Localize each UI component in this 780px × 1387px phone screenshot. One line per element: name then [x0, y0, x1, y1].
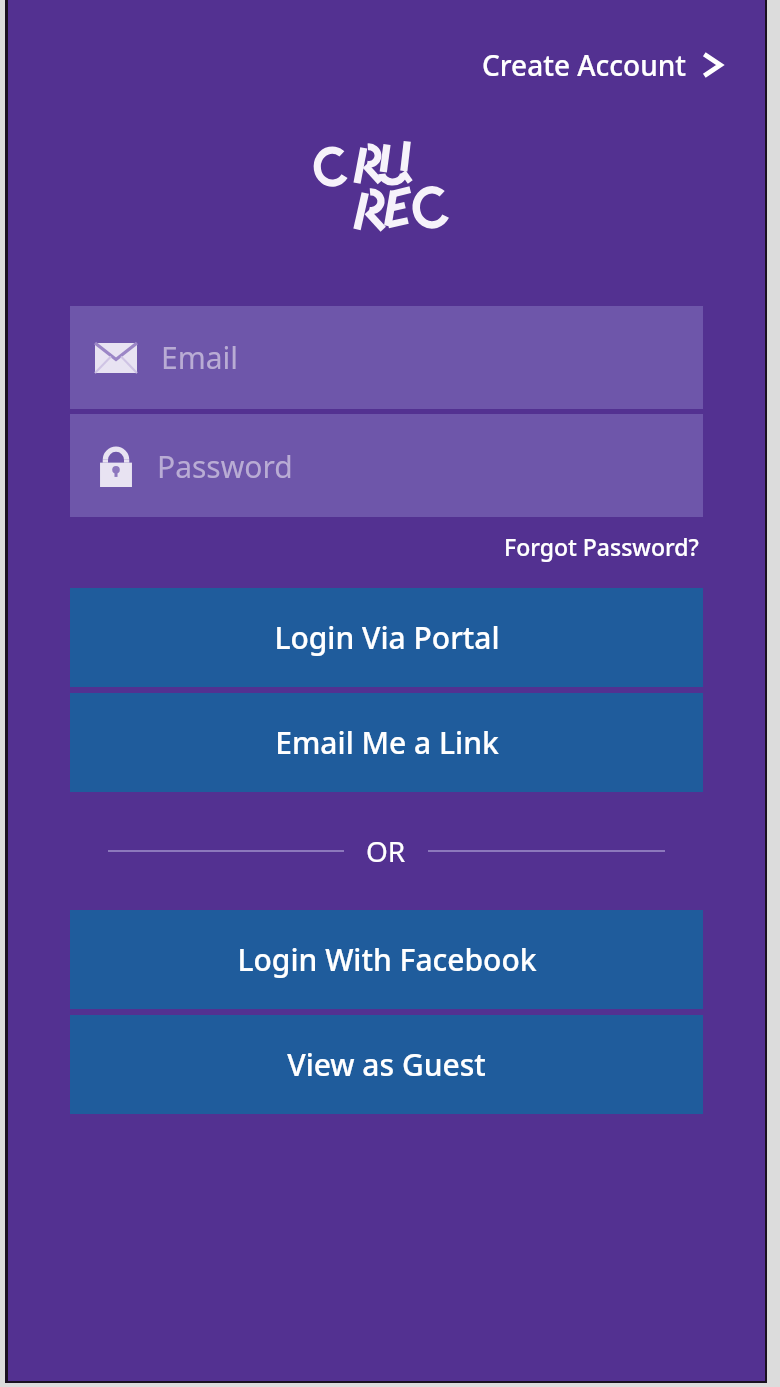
staticText: Email: [161, 337, 239, 378]
staticText: Password: [157, 446, 293, 487]
staticText: Forgot Password?: [504, 531, 699, 562]
staticText: OR: [366, 832, 406, 870]
staticText: View as Guest: [287, 1044, 486, 1085]
button[interactable]: Forgot Password?: [500, 527, 703, 566]
button[interactable]: View as Guest: [70, 1015, 703, 1114]
button[interactable]: Login Via Portal: [70, 588, 703, 687]
button[interactable]: Email Me a Link: [70, 693, 703, 792]
staticText: Email Me a Link: [275, 722, 499, 763]
staticText: Login Via Portal: [274, 617, 500, 658]
staticText: Create Account: [482, 46, 687, 84]
staticText: Login With Facebook: [237, 939, 537, 980]
button[interactable]: Password: [70, 414, 703, 517]
button[interactable]: Email: [70, 306, 703, 409]
button[interactable]: Login With Facebook: [70, 910, 703, 1009]
button[interactable]: Create Account: [476, 40, 729, 90]
